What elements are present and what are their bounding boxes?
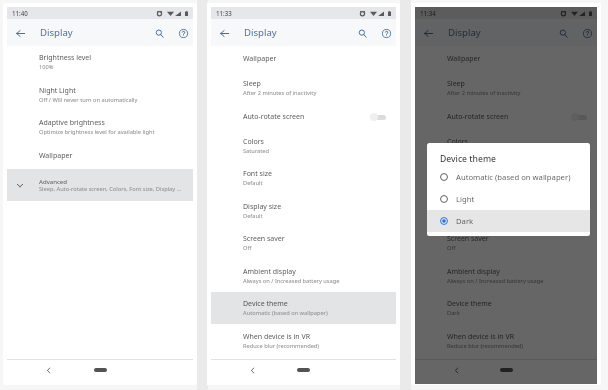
staticText: Screen saver	[243, 234, 285, 244]
staticText: After 2 minutes of inactivity	[243, 89, 317, 97]
staticText: Font size	[243, 169, 272, 179]
staticText: Auto-rotate screen	[243, 112, 305, 122]
staticText: Device theme	[447, 299, 492, 309]
staticText: Off	[447, 244, 456, 252]
staticText: Night Light	[39, 86, 76, 96]
button[interactable]: Display size	[415, 194, 597, 227]
button[interactable]: Home	[94, 368, 107, 372]
button[interactable]: Back	[450, 364, 462, 376]
staticText: Default	[243, 212, 263, 220]
button[interactable]: Home	[500, 368, 513, 372]
staticText: Default	[447, 212, 467, 220]
button[interactable]: Night Light	[7, 78, 193, 111]
button[interactable]: Adaptive brightness	[7, 111, 193, 143]
staticText: Sleep	[447, 79, 465, 89]
staticText: Adaptive brightness	[39, 118, 105, 128]
button[interactable]: Search	[151, 25, 167, 41]
button[interactable]: Advanced	[7, 169, 193, 201]
staticText: Ambient display	[447, 267, 500, 277]
staticText: 100%	[39, 63, 54, 71]
staticText: Colors	[447, 137, 468, 147]
button[interactable]: Navigate up	[11, 24, 29, 42]
button[interactable]: Search	[354, 25, 370, 41]
staticText: Off / Will never turn on automatically	[39, 96, 138, 104]
button[interactable]: Dark	[427, 210, 590, 232]
staticText: Always on / Increased battery usage	[447, 277, 544, 285]
button[interactable]: Ambient display	[211, 259, 396, 292]
staticText: Brightness level	[39, 53, 92, 63]
button[interactable]: Screen saver	[415, 227, 597, 259]
staticText: After 2 minutes of inactivity	[447, 89, 521, 97]
button[interactable]: When device is in VR	[211, 324, 396, 357]
staticText: 11:40	[12, 9, 28, 17]
button[interactable]: Font size	[211, 162, 396, 194]
staticText: Display size	[243, 202, 282, 212]
button[interactable]: Sleep	[211, 71, 396, 104]
staticText: Light	[456, 194, 475, 204]
staticText: Wallpaper	[39, 151, 73, 161]
button[interactable]: Home	[297, 368, 310, 372]
staticText: Saturated	[243, 147, 270, 155]
staticText: Sleep	[243, 79, 261, 89]
button[interactable]: Colors	[211, 129, 396, 162]
staticText: Device theme	[243, 299, 288, 309]
button[interactable]: Wallpaper	[211, 46, 396, 71]
staticText: Optimize brightness level for available …	[39, 128, 155, 136]
button[interactable]: Colors	[415, 129, 597, 162]
button[interactable]: Wallpaper	[415, 46, 597, 71]
button[interactable]: Brightness level	[7, 46, 193, 78]
staticText: Display size	[447, 202, 486, 212]
staticText: 11:33	[216, 9, 232, 17]
button[interactable]: When device is in VR	[415, 324, 597, 357]
button[interactable]: Ambient display	[415, 259, 597, 292]
button[interactable]: Screen saver	[211, 227, 396, 259]
button[interactable]: Help	[378, 25, 394, 41]
staticText: Default	[447, 179, 467, 187]
staticText: Colors	[243, 137, 264, 147]
button[interactable]: Display size	[211, 194, 396, 227]
staticText: Auto-rotate screen	[447, 112, 509, 122]
staticText: Display	[448, 26, 481, 39]
staticText: 11:34	[420, 9, 436, 17]
staticText: Wallpaper	[243, 54, 277, 64]
button[interactable]: Font size	[415, 162, 597, 194]
staticText: Reduce blur (recommended)	[447, 342, 524, 350]
staticText: Advanced	[39, 177, 68, 185]
button[interactable]: Automatic (based on wallpaper)	[427, 166, 590, 188]
staticText: Sleep, Auto-rotate screen, Colors, Font …	[39, 185, 183, 193]
button[interactable]: Wallpaper	[7, 143, 193, 169]
button[interactable]: Device theme	[415, 292, 597, 324]
staticText: Automatic (based on wallpaper)	[243, 309, 328, 317]
button[interactable]: Auto-rotate screen	[211, 104, 396, 129]
staticText: Dark	[456, 216, 474, 226]
staticText: Wallpaper	[447, 54, 481, 64]
button[interactable]: Navigate up	[215, 24, 233, 42]
button[interactable]: Device theme	[211, 292, 396, 324]
staticText: Ambient display	[243, 267, 296, 277]
staticText: Font size	[447, 169, 476, 179]
staticText: Display	[244, 26, 277, 39]
button[interactable]: Search	[555, 25, 571, 41]
button[interactable]: Back	[42, 364, 54, 376]
staticText: Default	[243, 179, 263, 187]
button[interactable]: Back	[246, 364, 258, 376]
button[interactable]: Help	[579, 25, 595, 41]
button[interactable]: Sleep	[415, 71, 597, 104]
button[interactable]: Navigate up	[419, 24, 437, 42]
staticText: Always on / Increased battery usage	[243, 277, 340, 285]
staticText: Off	[243, 244, 252, 252]
staticText: When device is in VR	[243, 332, 311, 342]
button[interactable]: Light	[427, 188, 590, 210]
staticText: Screen saver	[447, 234, 489, 244]
staticText: Reduce blur (recommended)	[243, 342, 320, 350]
staticText: Automatic (based on wallpaper)	[456, 172, 571, 182]
staticText: When device is in VR	[447, 332, 515, 342]
button[interactable]: Help	[175, 25, 191, 41]
staticText: Device theme	[440, 153, 496, 165]
staticText: Display	[40, 26, 73, 39]
button[interactable]: Auto-rotate screen	[415, 104, 597, 129]
staticText: Dark	[447, 309, 460, 317]
